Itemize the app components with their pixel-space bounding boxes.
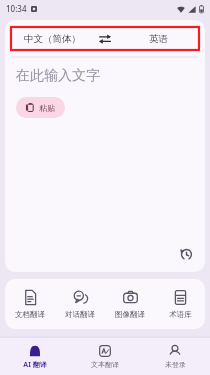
staticText: 英语 xyxy=(149,33,168,45)
button[interactable]: 对话翻译 xyxy=(55,283,105,325)
button[interactable]: 中文（简体） xyxy=(11,27,199,50)
staticText: 对话翻译 xyxy=(65,310,95,319)
staticText: 文本翻译 xyxy=(91,360,119,369)
button[interactable]: 文档翻译 xyxy=(5,283,55,325)
staticText: 在此输入文字 xyxy=(16,67,100,85)
staticText: 中文（简体） xyxy=(24,33,81,45)
staticText: 术语库 xyxy=(169,310,192,319)
staticText: 未登录 xyxy=(165,360,186,369)
button[interactable]: 未登录 xyxy=(140,340,210,373)
staticText: 10:34 xyxy=(6,3,27,14)
button[interactable]: AI 翻译 xyxy=(0,340,70,374)
button[interactable]: History xyxy=(176,244,196,264)
button[interactable]: 图像翻译 xyxy=(105,283,155,325)
button[interactable]: 术语库 xyxy=(155,283,205,325)
staticText: 图像翻译 xyxy=(115,310,145,319)
staticText: 文档翻译 xyxy=(15,310,45,319)
button[interactable]: Swap languages xyxy=(93,27,117,50)
staticText: 粘贴 xyxy=(39,103,55,113)
button[interactable]: 英语 xyxy=(117,33,199,45)
button[interactable]: 中文（简体） xyxy=(11,33,93,45)
button[interactable]: 文本翻译 xyxy=(70,340,140,373)
button[interactable]: 粘贴 xyxy=(16,97,65,118)
staticText: AI 翻译 xyxy=(23,360,47,370)
